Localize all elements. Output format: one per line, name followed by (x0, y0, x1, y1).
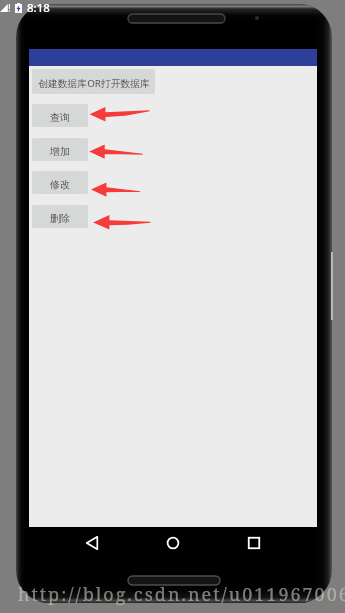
staticText: 增加 (50, 145, 70, 158)
button[interactable]: 增加 (32, 138, 88, 161)
button[interactable]: 创建数据库OR打开数据库 (32, 69, 155, 94)
staticText: 创建数据库OR打开数据库 (38, 77, 150, 90)
button[interactable]: Home (157, 527, 189, 559)
staticText: 删除 (50, 212, 70, 225)
button[interactable]: 删除 (32, 205, 88, 228)
button[interactable]: 查询 (32, 104, 88, 127)
staticText: http://blog.csdn.net/u011967006 (18, 582, 345, 607)
staticText: 修改 (50, 178, 70, 191)
button[interactable]: Back (76, 527, 108, 559)
button[interactable]: 修改 (32, 171, 88, 194)
staticText: 8:18 (27, 0, 50, 16)
staticText: 查询 (50, 111, 70, 124)
button[interactable]: Recent apps (238, 527, 270, 559)
